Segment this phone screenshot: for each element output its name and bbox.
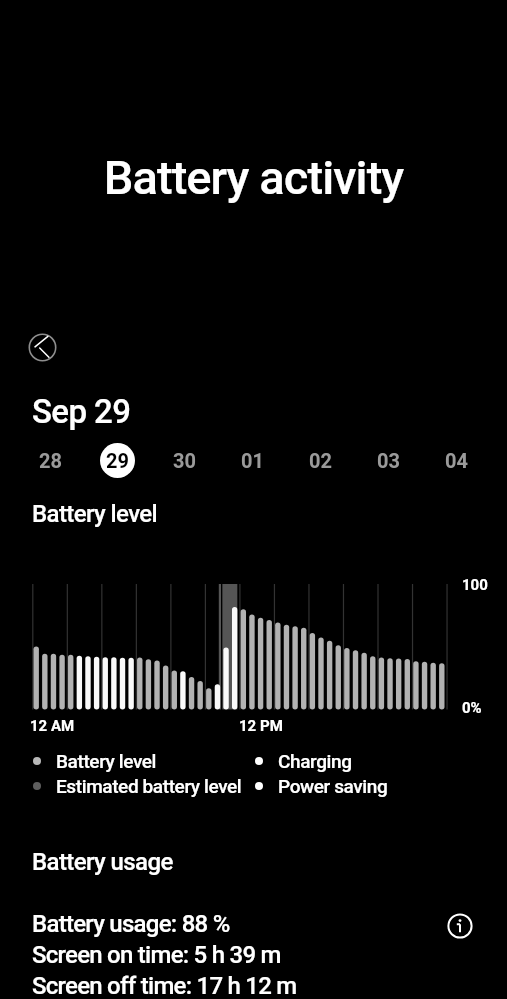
staticText: Power saving bbox=[278, 775, 388, 797]
staticText: 12 PM bbox=[239, 717, 283, 735]
button[interactable]: 29 bbox=[84, 440, 151, 480]
staticText: 12 AM bbox=[30, 717, 75, 735]
button[interactable]: 02 bbox=[286, 440, 354, 480]
staticText: 29 bbox=[106, 449, 129, 472]
staticText: 100 bbox=[462, 576, 488, 594]
staticText: Battery usage: 88 % Screen on time: 5 h … bbox=[32, 910, 297, 999]
staticText: Charging bbox=[278, 750, 352, 772]
button[interactable]: 01 bbox=[218, 440, 286, 480]
button[interactable]: 28 bbox=[17, 440, 84, 480]
staticText: Battery level bbox=[56, 750, 157, 772]
staticText: 02 bbox=[309, 449, 332, 472]
staticText: 0% bbox=[462, 699, 482, 717]
staticText: Sep 29 bbox=[32, 392, 131, 431]
staticText: 30 bbox=[173, 449, 196, 472]
staticText: 03 bbox=[377, 449, 400, 472]
staticText: Estimated battery level bbox=[56, 775, 242, 797]
button[interactable]: More information bbox=[444, 910, 476, 942]
button[interactable]: 04 bbox=[422, 440, 490, 480]
staticText: 01 bbox=[241, 449, 264, 472]
staticText: 04 bbox=[445, 449, 468, 472]
button[interactable]: 03 bbox=[354, 440, 422, 480]
staticText: Battery usage bbox=[32, 848, 173, 876]
staticText: Battery level bbox=[32, 500, 158, 528]
button[interactable]: 30 bbox=[151, 440, 218, 480]
button[interactable]: Back bbox=[23, 328, 62, 367]
staticText: 28 bbox=[39, 449, 62, 472]
staticText: Battery activity bbox=[0, 150, 507, 205]
